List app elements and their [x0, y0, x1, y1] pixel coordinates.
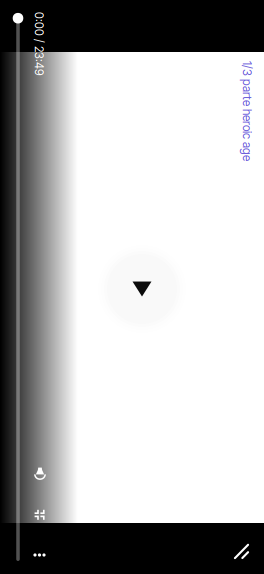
button[interactable]: More options: [21, 540, 57, 570]
button[interactable]: Exit full screen: [24, 499, 56, 531]
button[interactable]: Rotate screen: [225, 535, 257, 567]
staticText: 0:00 / 23:49: [7, 37, 71, 51]
button[interactable]: Volume: [24, 458, 56, 490]
button[interactable]: Play: [97, 244, 187, 334]
staticText: 1/3 parte heroic age: [197, 104, 264, 118]
